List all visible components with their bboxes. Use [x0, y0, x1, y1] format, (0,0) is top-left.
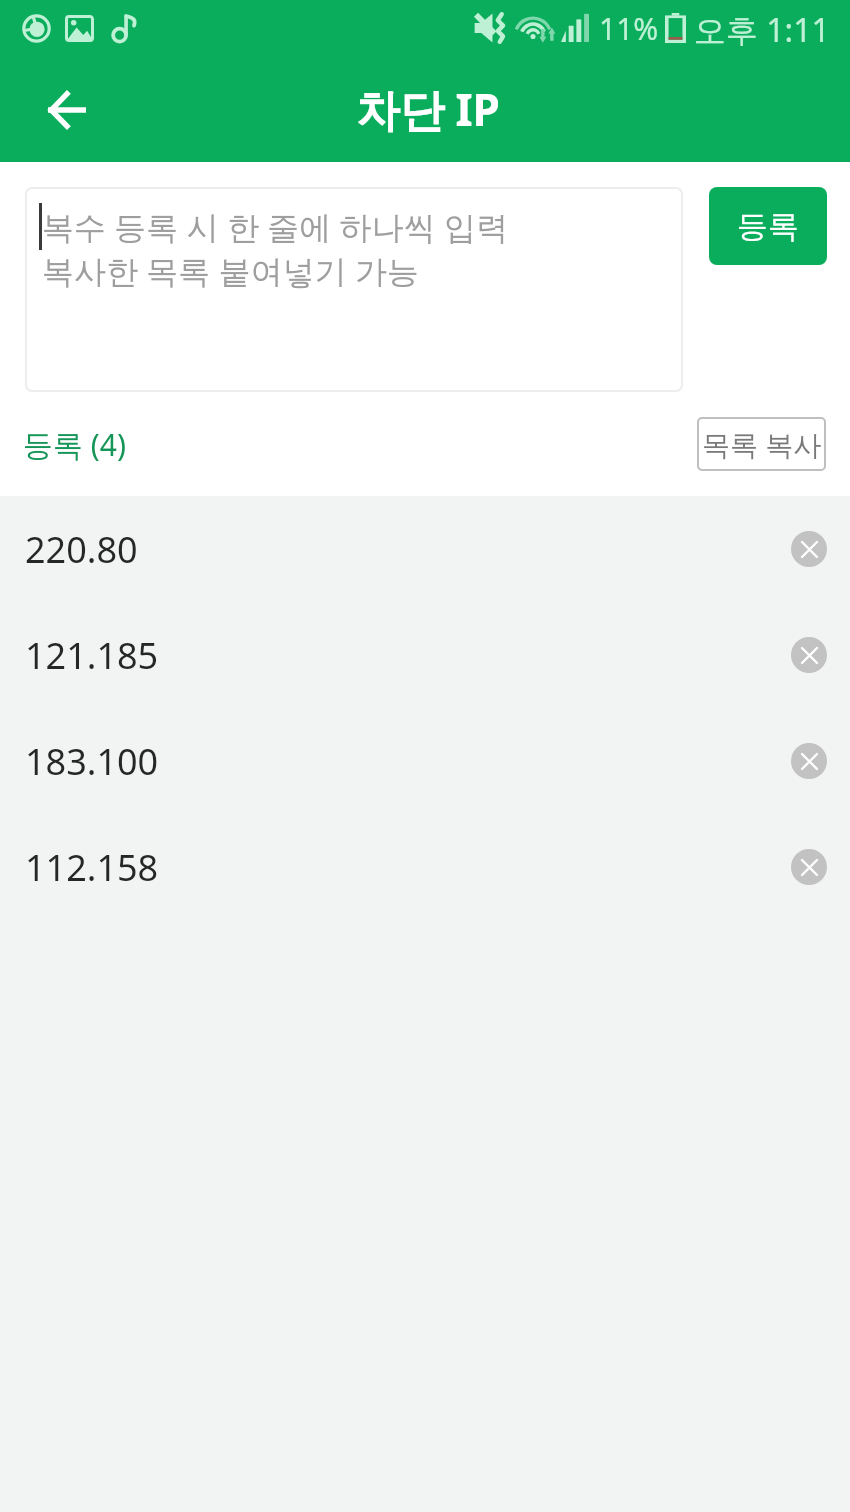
- button[interactable]: Delete: [791, 849, 827, 885]
- button[interactable]: 등록: [709, 187, 827, 265]
- button[interactable]: 183.100: [0, 708, 850, 814]
- staticText: 등록: [737, 207, 799, 246]
- staticText: 220.80: [25, 525, 138, 574]
- staticText: 등록 (4): [23, 424, 126, 465]
- staticText: 121.185: [25, 631, 159, 680]
- staticText: 복사한 목록 붙여넣기 가능: [42, 249, 419, 293]
- staticText: 183.100: [25, 737, 159, 786]
- button[interactable]: 220.80: [0, 496, 850, 602]
- staticText: 차단 IP: [356, 79, 500, 139]
- button[interactable]: Delete: [791, 637, 827, 673]
- button[interactable]: Back: [34, 77, 100, 143]
- staticText: 오후 1:11: [694, 8, 830, 52]
- button[interactable]: Delete: [791, 743, 827, 779]
- staticText: 목록 복사: [702, 425, 822, 463]
- button[interactable]: 121.185: [0, 602, 850, 708]
- button[interactable]: 112.158: [0, 814, 850, 920]
- button[interactable]: Delete: [791, 531, 827, 567]
- staticText: 11%: [599, 8, 659, 49]
- button[interactable]: 목록 복사: [697, 417, 826, 471]
- staticText: 복수 등록 시 한 줄에 하나씩 입력: [42, 205, 508, 249]
- staticText: 112.158: [25, 843, 159, 892]
- button[interactable]: IP input field: [25, 187, 683, 392]
